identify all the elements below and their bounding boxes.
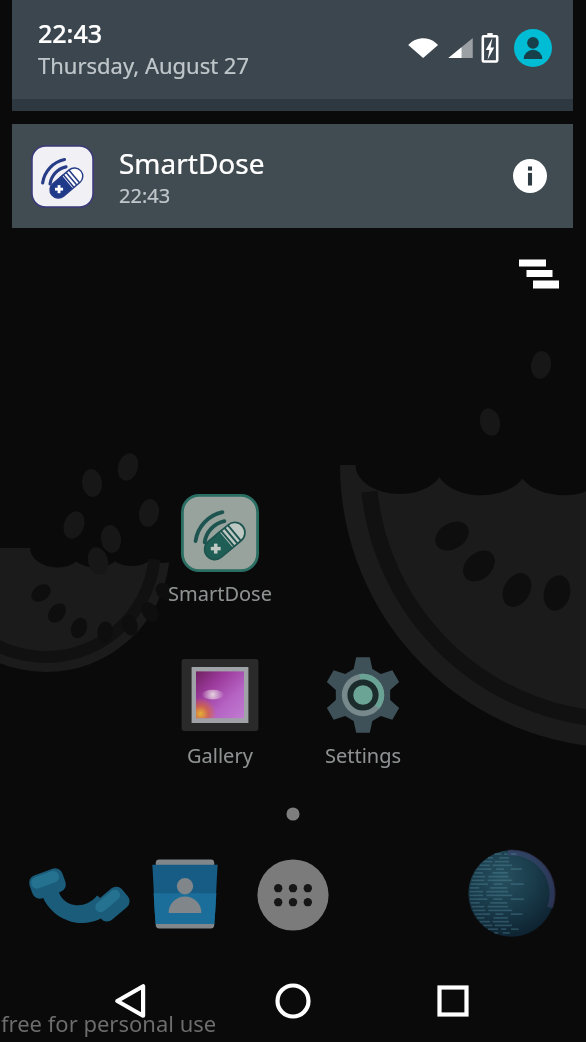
button[interactable]: Menu <box>509 250 569 298</box>
button[interactable]: App info <box>513 159 547 193</box>
button[interactable]: Browser <box>467 849 556 938</box>
staticText: 22:43 <box>38 16 103 50</box>
button[interactable]: SmartDose <box>12 124 573 228</box>
button[interactable]: User profile <box>514 29 552 67</box>
staticText: free for personal use <box>1 1008 217 1038</box>
button[interactable]: Contacts <box>142 851 228 937</box>
button[interactable]: Back <box>102 971 162 1031</box>
button[interactable]: SmartDose <box>158 493 282 607</box>
button[interactable]: All apps <box>253 855 333 935</box>
button[interactable]: Phone <box>27 849 124 946</box>
button[interactable]: Home <box>263 971 323 1031</box>
staticText: SmartDose <box>119 144 265 182</box>
staticText: Gallery <box>187 742 253 769</box>
button[interactable]: Settings <box>301 655 425 769</box>
button[interactable]: Recents <box>423 971 483 1031</box>
button[interactable]: Gallery <box>158 655 282 769</box>
staticText: 22:43 <box>119 182 171 209</box>
staticText: SmartDose <box>168 580 272 607</box>
staticText: Thursday, August 27 <box>38 50 250 80</box>
staticText: Settings <box>325 742 402 769</box>
